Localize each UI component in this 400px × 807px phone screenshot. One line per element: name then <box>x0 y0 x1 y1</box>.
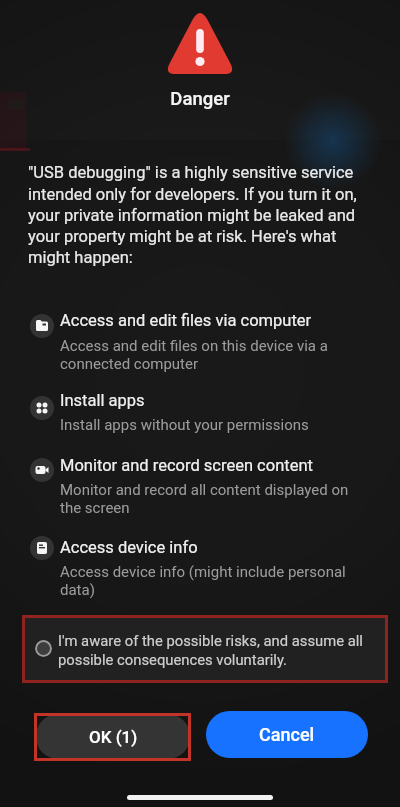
staticText: Install apps <box>60 391 145 410</box>
staticText: Access and edit files via computer <box>60 311 312 330</box>
staticText: Monitor and record screen content <box>60 456 313 475</box>
staticText: Access device info (might include person… <box>60 563 346 599</box>
staticText: Access and edit files on this device via… <box>60 337 328 373</box>
staticText: OK (1) <box>89 727 138 747</box>
button[interactable]: Cancel <box>206 711 368 758</box>
button[interactable]: Monitor and record screen content <box>60 456 313 475</box>
button[interactable]: OK (1) <box>36 714 190 759</box>
staticText: Access device info <box>60 538 198 557</box>
button[interactable] <box>35 640 52 657</box>
staticText: Install apps without your permissions <box>60 416 309 434</box>
button[interactable]: Install apps <box>60 391 145 410</box>
button[interactable]: I'm aware of the possible risks, and ass… <box>58 632 363 669</box>
staticText: Danger <box>0 88 400 110</box>
button[interactable]: Access device info <box>60 538 198 557</box>
staticText: Monitor and record all content displayed… <box>60 481 349 517</box>
staticText: Cancel <box>259 724 315 745</box>
button[interactable]: Access and edit files via computer <box>60 311 312 330</box>
staticText: "USB debugging" is a highly sensitive se… <box>28 163 357 267</box>
staticText: I'm aware of the possible risks, and ass… <box>58 632 363 669</box>
